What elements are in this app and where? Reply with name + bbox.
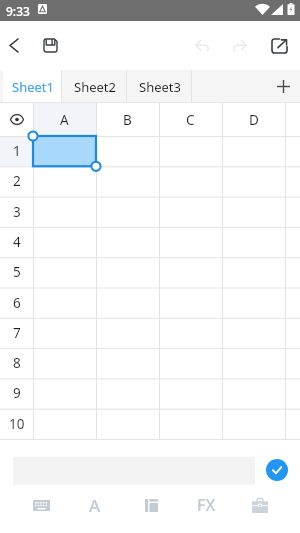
button[interactable]: Sheet1: [3, 70, 62, 103]
staticText: B: [123, 111, 132, 129]
button[interactable]: Save: [33, 21, 67, 70]
staticText: Sheet2: [74, 78, 116, 96]
button[interactable]: Sheet3: [127, 70, 192, 103]
button[interactable]: 2: [0, 166, 33, 196]
staticText: 10: [9, 415, 25, 433]
button[interactable]: 6: [0, 288, 33, 318]
button[interactable]: 3: [0, 197, 33, 227]
button[interactable]: 10: [0, 409, 33, 439]
button[interactable]: A: [33, 103, 96, 136]
button[interactable]: Toggle headers: [0, 103, 33, 136]
button[interactable]: Back: [0, 21, 31, 70]
button[interactable]: Cells: [127, 484, 175, 526]
button[interactable]: 5: [0, 257, 33, 287]
staticText: 3: [13, 203, 21, 221]
staticText: 9:33: [6, 3, 30, 19]
button[interactable]: Add sheet: [266, 70, 300, 103]
button[interactable]: Open in new: [262, 21, 296, 70]
staticText: Sheet1: [12, 78, 54, 96]
button[interactable]: 7: [0, 318, 33, 348]
button[interactable]: 9: [0, 378, 33, 408]
button[interactable]: Keyboard: [17, 484, 65, 526]
button[interactable]: B: [96, 103, 159, 136]
button[interactable]: D: [222, 103, 285, 136]
button[interactable]: Functions: [182, 484, 230, 526]
button[interactable]: Undo: [185, 21, 219, 70]
staticText: D: [249, 111, 259, 129]
staticText: 2: [13, 172, 21, 190]
button[interactable]: Redo: [223, 21, 257, 70]
staticText: A: [60, 111, 69, 129]
button[interactable]: C: [159, 103, 222, 136]
button[interactable]: Sheet2: [62, 70, 127, 103]
button[interactable]: Text style: [71, 484, 119, 526]
staticText: 4: [13, 233, 21, 251]
staticText: 9: [13, 384, 21, 402]
staticText: 1: [13, 142, 21, 160]
staticText: 6: [13, 294, 21, 312]
staticText: Sheet3: [139, 78, 181, 96]
staticText: 8: [13, 354, 21, 372]
button[interactable]: 4: [0, 227, 33, 257]
staticText: C: [186, 111, 195, 129]
button[interactable]: Tools: [236, 484, 284, 526]
staticText: FX: [197, 494, 216, 516]
staticText: A: [89, 494, 101, 517]
staticText: 7: [13, 324, 21, 342]
staticText: 5: [13, 263, 21, 281]
button[interactable]: 1: [0, 136, 33, 166]
button[interactable]: 8: [0, 348, 33, 378]
button[interactable]: Confirm: [266, 459, 288, 481]
